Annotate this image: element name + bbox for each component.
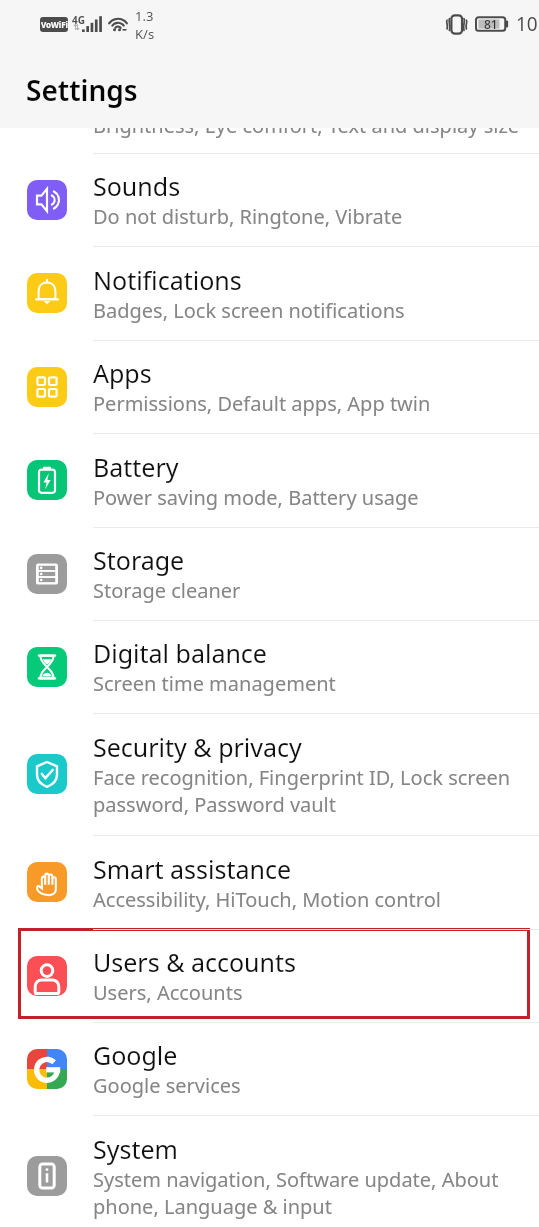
staticText: Apps	[93, 356, 152, 390]
staticText: Face recognition, Fingerprint ID, Lock s…	[93, 764, 519, 818]
button[interactable]: Notifications	[0, 246, 539, 340]
button[interactable]: Storage	[0, 527, 539, 620]
staticText: Storage	[93, 543, 185, 577]
staticText: Smart assistance	[93, 852, 291, 886]
staticText: 81	[484, 16, 498, 32]
staticText: Settings	[26, 71, 138, 109]
staticText: Badges, Lock screen notifications	[93, 297, 405, 324]
staticText: System navigation, Software update, Abou…	[93, 1166, 519, 1220]
staticText: Do not disturb, Ringtone, Vibrate	[93, 203, 403, 230]
staticText: Security & privacy	[93, 730, 302, 764]
staticText: ⇅	[73, 23, 80, 32]
staticText: 10	[516, 11, 538, 37]
button[interactable]: Sounds	[0, 153, 539, 246]
staticText: Screen time management	[93, 670, 336, 697]
button[interactable]: Security & privacy	[0, 713, 539, 835]
staticText: Users & accounts	[93, 945, 297, 979]
staticText: Users, Accounts	[93, 979, 243, 1006]
staticText: 1.3	[135, 7, 154, 25]
staticText: K/s	[135, 25, 155, 43]
staticText: Brightness, Eye comfort, Text and displa…	[93, 112, 520, 139]
staticText: Power saving mode, Battery usage	[93, 484, 419, 511]
button[interactable]: Digital balance	[0, 620, 539, 713]
staticText: Storage cleaner	[93, 577, 241, 604]
staticText: Google	[93, 1038, 178, 1072]
button[interactable]: System	[0, 1115, 539, 1227]
button[interactable]: Smart assistance	[0, 835, 539, 929]
staticText: Google services	[93, 1072, 241, 1099]
staticText: VoWiFi	[41, 19, 68, 30]
staticText: Notifications	[93, 263, 242, 297]
staticText: System	[93, 1132, 178, 1166]
staticText: 4G	[72, 13, 85, 27]
button[interactable]: Battery	[0, 433, 539, 527]
button[interactable]: Users & accounts	[0, 929, 539, 1022]
button[interactable]: Apps	[0, 340, 539, 433]
staticText: Permissions, Default apps, App twin	[93, 390, 431, 417]
staticText: Accessibility, HiTouch, Motion control	[93, 886, 441, 913]
staticText: Battery	[93, 450, 179, 484]
staticText: Sounds	[93, 169, 181, 203]
button[interactable]: Google	[0, 1022, 539, 1115]
staticText: Digital balance	[93, 636, 267, 670]
